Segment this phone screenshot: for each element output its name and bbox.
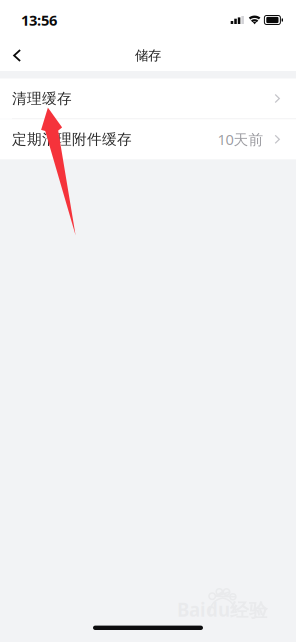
staticText: 13:56 — [21, 10, 57, 30]
staticText: 储存 — [135, 47, 161, 64]
staticText: Baidu经验 — [177, 597, 268, 622]
button[interactable]: Back — [0, 40, 47, 71]
staticText: 清理缓存 — [12, 89, 72, 107]
staticText: 10天前 — [217, 130, 263, 149]
button[interactable]: 定期清理附件缓存 — [0, 119, 296, 159]
button[interactable]: 清理缓存 — [0, 78, 296, 118]
staticText: 定期清理附件缓存 — [12, 130, 132, 148]
